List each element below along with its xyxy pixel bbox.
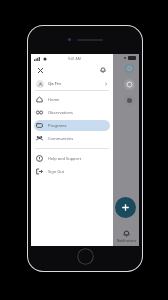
staticText: Sign Out [48,169,65,174]
button[interactable]: Help and Support [34,153,110,164]
staticText: Observations [48,110,73,115]
button[interactable]: Observations [34,107,110,118]
staticText: Programs [48,123,67,128]
button[interactable]: Add [115,197,136,218]
button[interactable]: Notifications [98,65,108,75]
button[interactable]: Programs [34,120,110,131]
button[interactable]: Communities [34,133,110,144]
button[interactable]: Profile [113,54,139,246]
button[interactable]: Profile [124,63,135,74]
button[interactable]: Settings [124,95,135,106]
staticText: Qa Fm [48,81,61,87]
button[interactable]: Notifications [114,230,138,243]
button[interactable]: Qa Fm [31,77,113,90]
button[interactable]: Refresh [124,79,135,90]
button[interactable]: Home [34,94,110,105]
staticText: 9:41 AM [68,56,81,61]
staticText: Notifications [117,239,136,243]
staticText: Communities [48,136,74,141]
staticText: Home [48,97,60,102]
button[interactable]: Close [36,66,45,75]
staticText: Help and Support [48,156,82,161]
button[interactable]: Sign Out [34,166,110,177]
